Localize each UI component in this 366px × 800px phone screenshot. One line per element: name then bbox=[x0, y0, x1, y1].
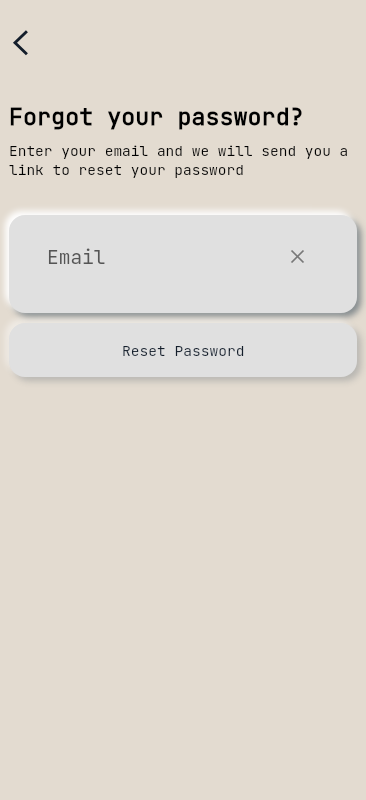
staticText: Enter your email and we will send you a … bbox=[9, 141, 358, 179]
button[interactable]: Clear text bbox=[284, 243, 310, 269]
button[interactable]: Back bbox=[0, 20, 44, 66]
staticText: Email bbox=[47, 244, 106, 270]
staticText: Forgot your password? bbox=[9, 101, 304, 132]
button[interactable]: Reset Password bbox=[9, 323, 357, 377]
button[interactable]: Email bbox=[9, 215, 357, 313]
staticText: Reset Password bbox=[122, 341, 245, 360]
